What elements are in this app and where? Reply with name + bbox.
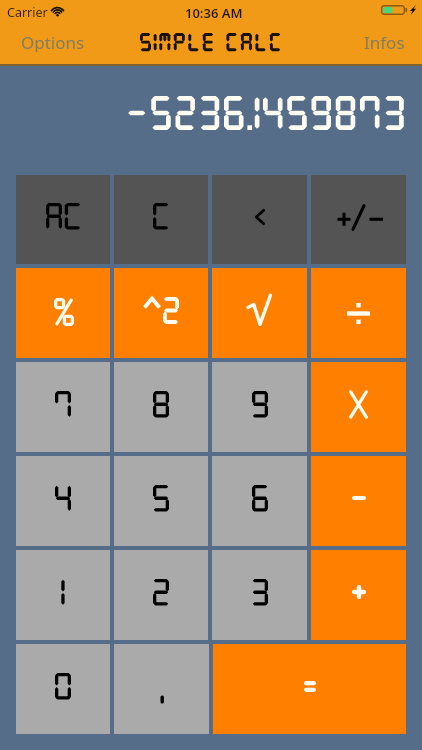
button[interactable]: Decimal point: [114, 644, 209, 734]
button[interactable]: Square: [114, 268, 208, 358]
button[interactable]: [16, 456, 110, 546]
staticText: Options: [21, 31, 85, 52]
button[interactable]: [16, 644, 110, 734]
button[interactable]: Infos: [349, 22, 420, 61]
button[interactable]: [16, 175, 110, 264]
button[interactable]: [212, 362, 307, 452]
staticText: 10:36 AM: [185, 4, 243, 22]
button[interactable]: Add: [311, 550, 406, 640]
button[interactable]: Multiply: [311, 362, 406, 452]
button[interactable]: Divide: [311, 268, 406, 358]
button[interactable]: [114, 362, 208, 452]
button[interactable]: Percent: [16, 268, 110, 358]
button[interactable]: Square root: [212, 268, 307, 358]
staticText: Infos: [364, 31, 405, 52]
button[interactable]: Options: [6, 22, 100, 61]
button[interactable]: [212, 550, 307, 640]
staticText: Carrier: [7, 4, 48, 21]
button[interactable]: [16, 550, 110, 640]
button[interactable]: Backspace: [212, 175, 307, 264]
button[interactable]: [114, 456, 208, 546]
button[interactable]: Equals: [213, 644, 406, 734]
button[interactable]: Plus minus: [311, 175, 406, 264]
button[interactable]: [114, 550, 208, 640]
button[interactable]: [16, 362, 110, 452]
button[interactable]: [212, 456, 307, 546]
button[interactable]: Subtract: [311, 456, 406, 546]
button[interactable]: [114, 175, 208, 264]
